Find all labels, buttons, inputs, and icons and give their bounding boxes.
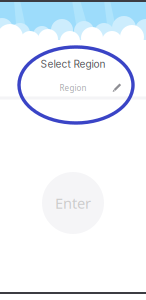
- staticText: Enter: [55, 193, 91, 213]
- staticText: Region: [59, 83, 86, 93]
- staticText: Select Region: [40, 58, 105, 70]
- button[interactable]: Enter: [42, 172, 104, 234]
